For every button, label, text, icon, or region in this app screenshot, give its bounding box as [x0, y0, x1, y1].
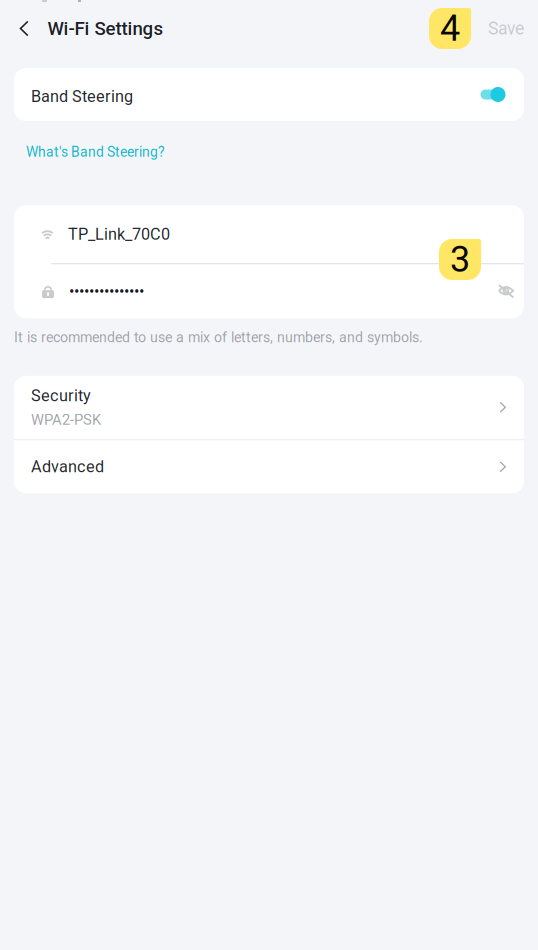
button[interactable]: Security [14, 376, 524, 439]
staticText: Save [488, 18, 524, 39]
button[interactable]: Show password [486, 276, 514, 307]
staticText: Wi-Fi Settings [48, 18, 164, 39]
staticText: It is recommended to use a mix of letter… [14, 329, 423, 346]
staticText: 4 [440, 7, 460, 50]
staticText: TP_Link_70C0 [68, 225, 170, 244]
staticText: ••••••••••••••• [69, 282, 144, 301]
staticText: Security [31, 386, 91, 405]
staticText: 3 [450, 238, 470, 281]
staticText: WPA2-PSK [31, 411, 101, 428]
staticText: Band Steering [31, 87, 133, 106]
button[interactable]: Back [0, 5, 45, 51]
button[interactable]: Save [474, 5, 538, 51]
button[interactable]: Band Steering [462, 73, 501, 115]
staticText: Advanced [31, 457, 104, 476]
staticText: What's Band Steering? [26, 144, 165, 160]
button[interactable]: Advanced [14, 440, 524, 493]
button[interactable]: What's Band Steering? [0, 121, 177, 168]
